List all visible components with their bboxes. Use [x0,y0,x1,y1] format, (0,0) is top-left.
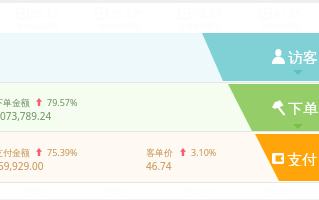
staticText: 下单金额 [0,97,30,108]
staticText: 59,929.00 [0,159,44,173]
staticText: 073,789.24 [0,109,52,123]
button[interactable]: 下单 [272,100,318,115]
button[interactable]: 客单价 [146,146,217,173]
staticText: 3.10% [191,146,217,158]
button[interactable]: 下单金额 [0,96,78,108]
staticText: 访客 [288,49,318,64]
staticText: 客单价 [146,147,173,158]
staticText: 支付 [287,151,317,166]
staticText: 下单 [288,100,318,115]
staticText: 支付金额 [0,147,30,158]
staticText: 46.74 [146,159,172,173]
button[interactable]: 访客 [272,49,318,64]
button[interactable]: 支付金额 [0,146,78,158]
staticText: 79.57% [47,96,78,108]
button[interactable]: 支付 [272,151,317,166]
staticText: 75.39% [47,146,78,158]
